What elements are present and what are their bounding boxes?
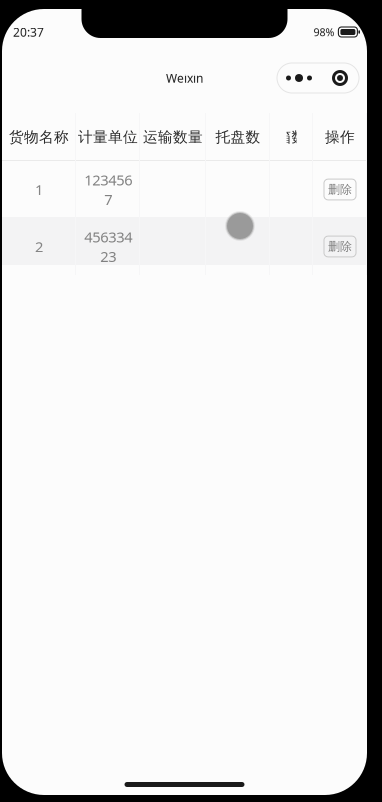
staticText: 托盘数 (215, 128, 260, 146)
staticText: 计量单位 (78, 128, 138, 146)
staticText: 98% (313, 25, 334, 39)
staticText: 20:37 (13, 24, 44, 40)
staticText: 2 (35, 237, 43, 256)
staticText: 45633423 (84, 227, 132, 266)
staticText: 1 (35, 180, 43, 199)
staticText: 删除 (328, 182, 352, 197)
button[interactable]: 删除 (324, 179, 356, 200)
staticText: Weixin (166, 70, 203, 86)
staticText: 箱数 (276, 128, 306, 146)
staticText: 1234567 (84, 170, 132, 209)
staticText: 删除 (328, 239, 352, 254)
button[interactable]: 删除 (324, 236, 356, 257)
staticText: 操作 (325, 128, 355, 146)
staticText: 运输数量 (143, 128, 203, 146)
staticText: 货物名称 (9, 128, 69, 146)
button[interactable]: More (277, 63, 321, 93)
button[interactable]: Close mini program (321, 63, 359, 93)
